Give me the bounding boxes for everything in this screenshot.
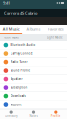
button[interactable]: Sound Profile [0, 66, 67, 75]
button[interactable]: Notes [22, 109, 45, 119]
button[interactable]: Favorites [45, 25, 67, 34]
button[interactable]: Albums [22, 25, 45, 34]
staticText: Directory [5, 114, 17, 118]
button[interactable]: Downloads [0, 92, 67, 100]
button[interactable]: Directory [0, 109, 22, 119]
staticText: Downloads [11, 94, 26, 98]
button[interactable]: Profile [45, 109, 67, 119]
staticText: CarPlay Connect [11, 52, 33, 55]
staticText: YOUR MENU [4, 36, 19, 39]
button[interactable]: Equalizer [0, 75, 67, 83]
staticText: All Music [3, 26, 20, 32]
staticText: Light Mode [47, 36, 63, 39]
staticText: Favorites [48, 26, 64, 32]
button[interactable]: CarPlay Connect [0, 49, 67, 58]
staticText: Subscription [11, 86, 28, 89]
staticText: Account [11, 103, 22, 106]
staticText: Profile [51, 114, 61, 118]
button[interactable]: All Music [0, 25, 22, 34]
staticText: Sound Profile [11, 69, 31, 72]
staticText: 9:41 [3, 0, 10, 6]
staticText: Carrera 4S Cabrio [4, 11, 37, 16]
button[interactable]: Account [0, 100, 67, 109]
button[interactable]: Bluetooth Audio [0, 41, 67, 49]
staticText: Radio Tuner [11, 60, 28, 64]
staticText: Notes [29, 114, 37, 118]
staticText: Equalizer [11, 77, 23, 81]
staticText: Bluetooth Audio [11, 43, 36, 47]
button[interactable]: Subscription [0, 83, 67, 92]
button[interactable]: Radio Tuner [0, 58, 67, 66]
staticText: Albums [26, 26, 40, 32]
